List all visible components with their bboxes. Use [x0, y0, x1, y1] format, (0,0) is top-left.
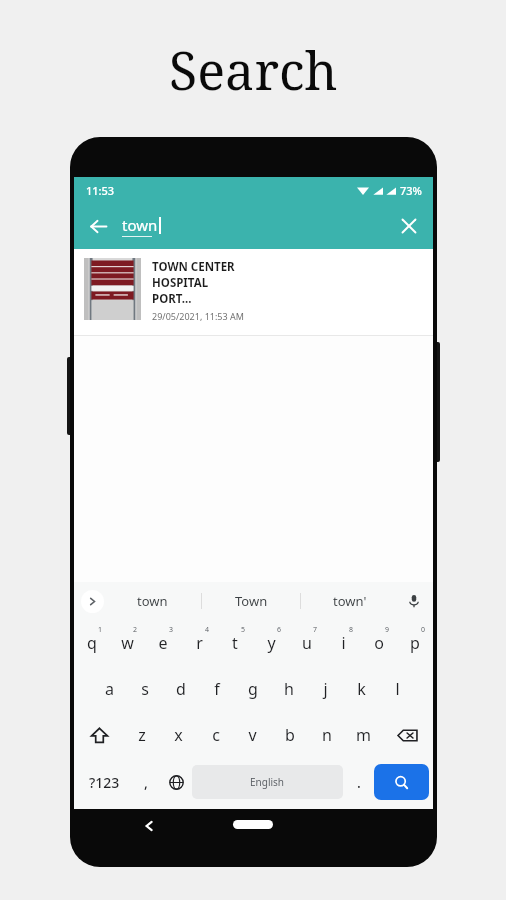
- button[interactable]: v: [234, 712, 271, 758]
- button[interactable]: l: [379, 666, 415, 712]
- button[interactable]: Clear search: [385, 203, 433, 249]
- staticText: n: [322, 724, 332, 746]
- button[interactable]: x: [160, 712, 197, 758]
- button[interactable]: Shift: [74, 712, 124, 758]
- staticText: k: [357, 678, 366, 700]
- button[interactable]: o: [361, 620, 397, 666]
- button[interactable]: r: [181, 620, 217, 666]
- button[interactable]: .: [343, 758, 374, 806]
- staticText: 0: [421, 625, 426, 635]
- staticText: ,: [144, 773, 148, 792]
- staticText: w: [121, 632, 134, 654]
- button[interactable]: t: [217, 620, 253, 666]
- staticText: y: [267, 632, 276, 654]
- staticText: .: [357, 773, 361, 792]
- staticText: f: [214, 678, 220, 700]
- staticText: 5: [241, 625, 246, 635]
- staticText: h: [284, 678, 294, 700]
- button[interactable]: j: [307, 666, 343, 712]
- staticText: Town: [235, 592, 268, 610]
- staticText: English: [250, 775, 285, 789]
- button[interactable]: More suggestions: [81, 590, 104, 613]
- staticText: p: [410, 632, 420, 654]
- staticText: 1: [98, 625, 103, 635]
- button[interactable]: Home: [233, 820, 273, 829]
- button[interactable]: f: [199, 666, 235, 712]
- button[interactable]: ?123: [78, 758, 130, 806]
- button[interactable]: ,: [130, 758, 161, 806]
- staticText: s: [141, 678, 149, 700]
- button[interactable]: c: [197, 712, 234, 758]
- button[interactable]: TOWN CENTER: [74, 249, 433, 335]
- button[interactable]: Voice input: [399, 582, 429, 620]
- staticText: 6: [277, 625, 282, 635]
- button[interactable]: g: [235, 666, 271, 712]
- staticText: b: [285, 724, 295, 746]
- staticText: 7: [313, 625, 318, 635]
- staticText: u: [302, 632, 312, 654]
- staticText: PORT...: [152, 291, 192, 307]
- staticText: m: [356, 724, 371, 746]
- staticText: Search: [169, 34, 338, 105]
- button[interactable]: town: [122, 203, 385, 249]
- staticText: 73%: [400, 183, 422, 198]
- staticText: z: [138, 724, 146, 746]
- staticText: j: [323, 678, 328, 700]
- button[interactable]: h: [271, 666, 307, 712]
- button[interactable]: k: [343, 666, 379, 712]
- staticText: g: [248, 678, 258, 700]
- button[interactable]: English: [192, 765, 343, 799]
- staticText: d: [176, 678, 186, 700]
- staticText: 11:53: [86, 183, 115, 198]
- button[interactable]: u: [289, 620, 325, 666]
- staticText: o: [374, 632, 384, 654]
- staticText: HOSPITAL: [152, 275, 209, 291]
- staticText: town: [137, 592, 168, 610]
- staticText: r: [196, 632, 203, 654]
- button[interactable]: Backspace: [382, 712, 433, 758]
- staticText: q: [87, 632, 97, 654]
- button[interactable]: Navigate up: [74, 203, 122, 249]
- staticText: 4: [205, 625, 210, 635]
- staticText: 2: [133, 625, 138, 635]
- button[interactable]: Back: [132, 809, 166, 843]
- staticText: a: [105, 678, 114, 700]
- button[interactable]: q: [74, 620, 109, 666]
- button[interactable]: town: [104, 582, 201, 620]
- staticText: t: [232, 632, 238, 654]
- staticText: e: [158, 632, 168, 654]
- button[interactable]: d: [163, 666, 199, 712]
- button[interactable]: e: [145, 620, 181, 666]
- button[interactable]: town': [301, 582, 399, 620]
- button[interactable]: y: [253, 620, 289, 666]
- staticText: l: [395, 678, 400, 700]
- button[interactable]: Search: [374, 764, 429, 800]
- button[interactable]: i: [325, 620, 361, 666]
- staticText: ?123: [89, 773, 120, 792]
- button[interactable]: s: [127, 666, 163, 712]
- staticText: town: [122, 215, 158, 235]
- staticText: v: [248, 724, 257, 746]
- button[interactable]: m: [345, 712, 382, 758]
- staticText: i: [341, 632, 346, 654]
- button[interactable]: z: [124, 712, 160, 758]
- staticText: 3: [169, 625, 174, 635]
- button[interactable]: Town: [202, 582, 300, 620]
- button[interactable]: w: [109, 620, 145, 666]
- staticText: TOWN CENTER: [152, 259, 235, 275]
- staticText: 9: [385, 625, 390, 635]
- staticText: c: [212, 724, 220, 746]
- button[interactable]: b: [271, 712, 308, 758]
- staticText: 8: [349, 625, 354, 635]
- button[interactable]: a: [91, 666, 127, 712]
- staticText: x: [174, 724, 183, 746]
- staticText: 29/05/2021, 11:53 AM: [152, 310, 244, 322]
- button[interactable]: Change language: [161, 758, 192, 806]
- staticText: town': [333, 592, 367, 610]
- button[interactable]: n: [308, 712, 345, 758]
- button[interactable]: p: [397, 620, 433, 666]
